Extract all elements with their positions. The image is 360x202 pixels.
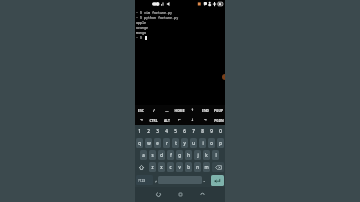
button[interactable]: i [199,138,206,148]
staticText: q [138,140,141,146]
button[interactable]: ← [173,115,186,125]
staticText: i [202,140,204,146]
staticText: d [160,152,163,158]
button[interactable]: q [136,138,143,148]
button[interactable]: 3 [153,125,162,137]
staticText: ESC [138,108,144,112]
button[interactable]: j [194,150,201,160]
staticText: g [178,152,181,158]
staticText: n [196,164,199,170]
button[interactable]: 7 [189,125,198,137]
staticText: 7 [192,128,195,134]
button[interactable]: n [194,162,201,172]
button[interactable]: HOME [173,105,186,115]
staticText: l [215,152,217,158]
button[interactable]: o [208,138,215,148]
staticText: r [166,140,168,146]
button[interactable]: w [145,138,152,148]
staticText: 4 [165,128,168,134]
button[interactable]: e [154,138,161,148]
button[interactable]: CTRL [147,115,160,125]
button[interactable]: g [176,150,183,160]
button[interactable]: k [203,150,210,160]
button[interactable]: ↓ [186,115,199,125]
button[interactable]: m [203,162,210,172]
staticText: o [210,140,213,146]
staticText: w [147,140,151,146]
button[interactable]: p [217,138,224,148]
staticText: c [169,164,172,170]
staticText: , [155,177,157,183]
button[interactable]: → [199,115,212,125]
button[interactable]: 2 [144,125,153,137]
button[interactable]: — [160,105,173,115]
button[interactable]: 9 [207,125,216,137]
button[interactable]: . [202,175,206,185]
button[interactable]: l [212,150,219,160]
staticText: f [170,152,172,158]
staticText: 1 [138,128,141,134]
button[interactable]: ↑ [186,105,199,115]
staticText: p [219,140,222,146]
staticText: ~ $ python fortune.py [136,15,179,20]
button[interactable]: Home [174,187,186,202]
staticText: ↑ [191,108,194,112]
button[interactable]: 6 [180,125,189,137]
staticText: ~ $ vim fortune.py [136,10,173,15]
button[interactable]: d [158,150,165,160]
staticText: ~ $ [136,35,145,40]
button[interactable]: c [167,162,174,172]
staticText: ⇥ [140,118,143,122]
button[interactable]: PGUP [212,105,225,115]
button[interactable]: ?123 [136,175,153,185]
button[interactable]: r [163,138,170,148]
button[interactable]: Backspace [212,162,224,172]
staticText: a [142,152,145,158]
button[interactable]: a [140,150,147,160]
staticText: END [202,108,209,112]
button[interactable]: 0 [216,125,225,137]
staticText: orange [136,25,149,30]
button[interactable]: END [199,105,212,115]
button[interactable]: z [149,162,156,172]
staticText: / [153,108,155,112]
button[interactable]: PGDN [212,115,225,125]
button[interactable]: / [147,105,160,115]
button[interactable]: Enter [211,175,224,186]
button[interactable]: x [158,162,165,172]
button[interactable]: Back [152,187,164,202]
staticText: mango [136,30,147,35]
button[interactable]: b [185,162,192,172]
staticText: k [205,152,208,158]
staticText: — [165,108,169,112]
staticText: 9 [210,128,213,134]
staticText: CTRL [149,118,158,122]
button[interactable]: 8 [198,125,207,137]
button[interactable]: ALT [160,115,173,125]
button[interactable]: Shift [136,162,147,172]
button[interactable]: v [176,162,183,172]
button[interactable]: t [172,138,179,148]
button[interactable]: y [181,138,188,148]
button[interactable]: 1 [135,125,144,137]
button[interactable]: Recents [196,187,208,202]
staticText: PGUP [214,108,223,112]
button[interactable]: ⇥ [135,115,147,125]
button[interactable]: , [154,175,158,185]
button[interactable]: ESC [135,105,147,115]
staticText: t [175,140,177,146]
staticText: ← [178,118,181,122]
button[interactable]: u [190,138,197,148]
staticText: u [192,140,195,146]
staticText: 3 [156,128,159,134]
button[interactable]: s [149,150,156,160]
staticText: 5 [174,128,177,134]
button[interactable]: 5 [171,125,180,137]
staticText: ?123 [138,178,146,183]
staticText: m [204,164,209,170]
button[interactable]: f [167,150,174,160]
staticText: h [187,152,190,158]
button[interactable]: h [185,150,192,160]
button[interactable]: 4 [162,125,171,137]
